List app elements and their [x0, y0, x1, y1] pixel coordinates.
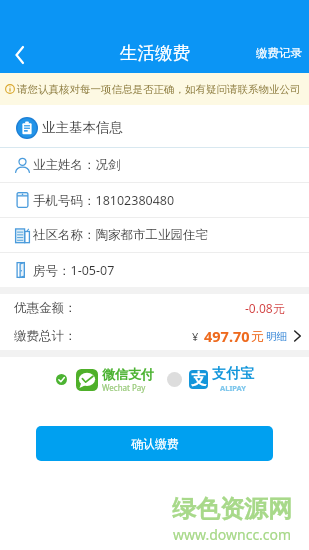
staticText: 业主姓名：况剑 [33, 157, 121, 173]
button[interactable]: 房号：1-05-07 [0, 253, 309, 287]
staticText: 支付宝 [212, 365, 254, 383]
staticText: 元 [251, 328, 264, 344]
button[interactable]: 手机号码：18102380480 [0, 183, 309, 217]
button[interactable]: Back [0, 37, 40, 73]
staticText: ALIPAY [220, 383, 247, 393]
staticText: Wechat Pay [102, 382, 146, 393]
staticText: 微信支付 [102, 366, 154, 382]
button[interactable]: 微信支付 [56, 366, 154, 393]
staticText: 明细 [266, 330, 287, 343]
button[interactable]: 支 [167, 365, 254, 393]
staticText: 确认缴费 [131, 436, 179, 451]
staticText: 缴费记录 [256, 46, 302, 60]
staticText: 支 [191, 370, 206, 389]
staticText: 手机号码：18102380480 [33, 192, 175, 209]
staticText: 优惠金额： [14, 300, 77, 316]
staticText: 业主基本信息 [42, 119, 123, 136]
staticText: 请您认真核对每一项信息是否正确，如有疑问请联系物业公司 [17, 83, 301, 96]
staticText: 缴费总计： [14, 328, 77, 344]
button[interactable]: 缴费记录 [253, 44, 305, 62]
button[interactable]: 社区名称：陶家都市工业园住宅 [0, 218, 309, 252]
staticText: -0.08元 [245, 300, 285, 316]
staticText: 社区名称：陶家都市工业园住宅 [33, 227, 208, 243]
staticText: 房号：1-05-07 [33, 262, 115, 279]
button[interactable]: 缴费总计： [0, 322, 309, 350]
button[interactable]: 确认缴费 [36, 426, 273, 461]
staticText: ¥ [192, 329, 199, 344]
button[interactable]: 业主姓名：况剑 [0, 148, 309, 182]
staticText: www.downcc.com [173, 525, 292, 544]
staticText: 497.70 [204, 326, 250, 346]
staticText: 绿色资源网 [172, 494, 292, 524]
button[interactable]: 业主基本信息 [0, 105, 309, 147]
staticText: 生活缴费 [120, 42, 190, 64]
